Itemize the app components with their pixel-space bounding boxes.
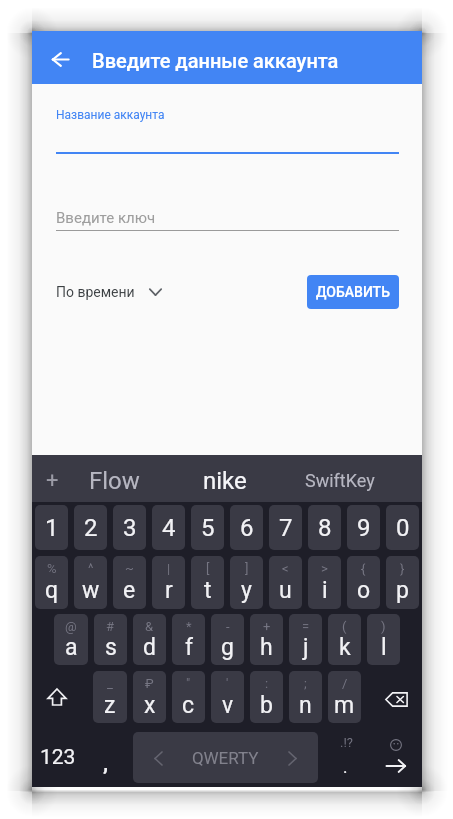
button[interactable]: {	[347, 556, 380, 609]
button[interactable]: |	[152, 556, 185, 609]
button[interactable]: 1	[35, 505, 68, 550]
staticText: }	[400, 561, 405, 576]
staticText: >	[321, 561, 328, 576]
button[interactable]: Space	[133, 732, 318, 783]
button[interactable]: ~	[113, 556, 146, 609]
staticText: 9	[357, 514, 371, 542]
button[interactable]: 5	[191, 505, 224, 550]
button[interactable]: Enter	[370, 732, 421, 783]
button[interactable]: Shift	[32, 671, 90, 723]
staticText: 7	[279, 514, 293, 542]
staticText: i	[322, 577, 328, 604]
button[interactable]: +	[250, 614, 283, 665]
staticText: ДОБАВИТЬ	[316, 284, 390, 300]
button[interactable]: ,	[88, 732, 124, 783]
staticText: e	[123, 577, 136, 604]
staticText: Введите ключ	[56, 209, 156, 227]
staticText: 4	[162, 514, 176, 542]
button[interactable]: По времени	[56, 275, 162, 309]
staticText: (	[342, 619, 347, 634]
staticText: 6	[240, 514, 254, 542]
button[interactable]: ]	[230, 556, 263, 609]
staticText: 3	[123, 514, 137, 542]
button[interactable]: %	[35, 556, 68, 609]
button[interactable]: ;	[289, 671, 322, 723]
staticText: n	[299, 692, 312, 719]
button[interactable]: Backspace	[364, 671, 422, 723]
button[interactable]: nike	[160, 455, 290, 502]
button[interactable]: >	[308, 556, 341, 609]
button[interactable]: .!?	[324, 732, 368, 783]
button[interactable]: ДОБАВИТЬ	[307, 275, 399, 309]
button[interactable]: 6	[230, 505, 263, 550]
staticText: c	[182, 692, 195, 719]
staticText: nike	[203, 467, 247, 495]
staticText: ^	[88, 561, 94, 576]
button[interactable]: 2	[74, 505, 107, 550]
staticText: 2	[84, 514, 98, 542]
button[interactable]: <	[269, 556, 302, 609]
button[interactable]: 4	[152, 505, 185, 550]
button[interactable]: 3	[113, 505, 146, 550]
staticText: d	[143, 634, 156, 661]
staticText: +	[263, 619, 271, 634]
staticText: g	[221, 634, 234, 661]
staticText: |	[167, 561, 171, 576]
button[interactable]: 8	[308, 505, 341, 550]
button[interactable]: 7	[269, 505, 302, 550]
button[interactable]: ₽	[133, 671, 166, 723]
button[interactable]: Back	[32, 31, 84, 84]
staticText: z	[104, 692, 116, 719]
button[interactable]: Clipboard	[32, 455, 72, 502]
staticText: По времени	[56, 284, 135, 300]
staticText: SwiftKey	[305, 470, 375, 491]
staticText: '	[226, 676, 229, 691]
staticText: )	[381, 619, 386, 634]
staticText: {	[361, 561, 366, 576]
staticText: Введите данные аккаунта	[92, 49, 339, 72]
staticText: r	[165, 577, 173, 604]
staticText: h	[260, 634, 273, 661]
button[interactable]: '	[211, 671, 244, 723]
staticText: ]	[245, 561, 249, 576]
staticText: "	[186, 676, 191, 691]
staticText: 5	[201, 514, 215, 542]
staticText: _	[107, 676, 113, 691]
staticText: q	[45, 577, 59, 604]
staticText: 0	[396, 514, 410, 542]
button[interactable]: -	[211, 614, 244, 665]
button[interactable]: "	[172, 671, 205, 723]
staticText: ₽	[145, 676, 154, 691]
staticText: y	[241, 577, 252, 604]
button[interactable]: [	[191, 556, 224, 609]
button[interactable]: :	[250, 671, 283, 723]
staticText: /	[342, 676, 348, 691]
button[interactable]: 0	[386, 505, 419, 550]
button[interactable]: SwiftKey	[275, 455, 405, 502]
staticText: Название аккаунта	[56, 108, 165, 122]
button[interactable]: _	[93, 671, 127, 723]
button[interactable]: =	[289, 614, 322, 665]
button[interactable]: )	[367, 614, 400, 665]
button[interactable]: (	[328, 614, 361, 665]
staticText: -	[226, 619, 230, 634]
button[interactable]: @	[54, 614, 88, 665]
staticText: l	[381, 634, 387, 661]
button[interactable]: }	[386, 556, 419, 609]
staticText: =	[302, 619, 310, 634]
staticText: a	[65, 634, 78, 661]
staticText: o	[357, 577, 371, 604]
button[interactable]: 123	[34, 732, 82, 783]
staticText: ~	[125, 561, 134, 576]
button[interactable]: Flow	[49, 455, 179, 502]
button[interactable]: ^	[74, 556, 107, 609]
button[interactable]: 9	[347, 505, 380, 550]
staticText: b	[260, 692, 273, 719]
staticText: w	[82, 577, 100, 604]
button[interactable]: /	[328, 671, 361, 723]
button[interactable]: #	[94, 614, 127, 665]
button[interactable]: &	[133, 614, 166, 665]
staticText: @	[65, 619, 77, 634]
staticText: *	[186, 619, 192, 634]
button[interactable]: *	[172, 614, 205, 665]
